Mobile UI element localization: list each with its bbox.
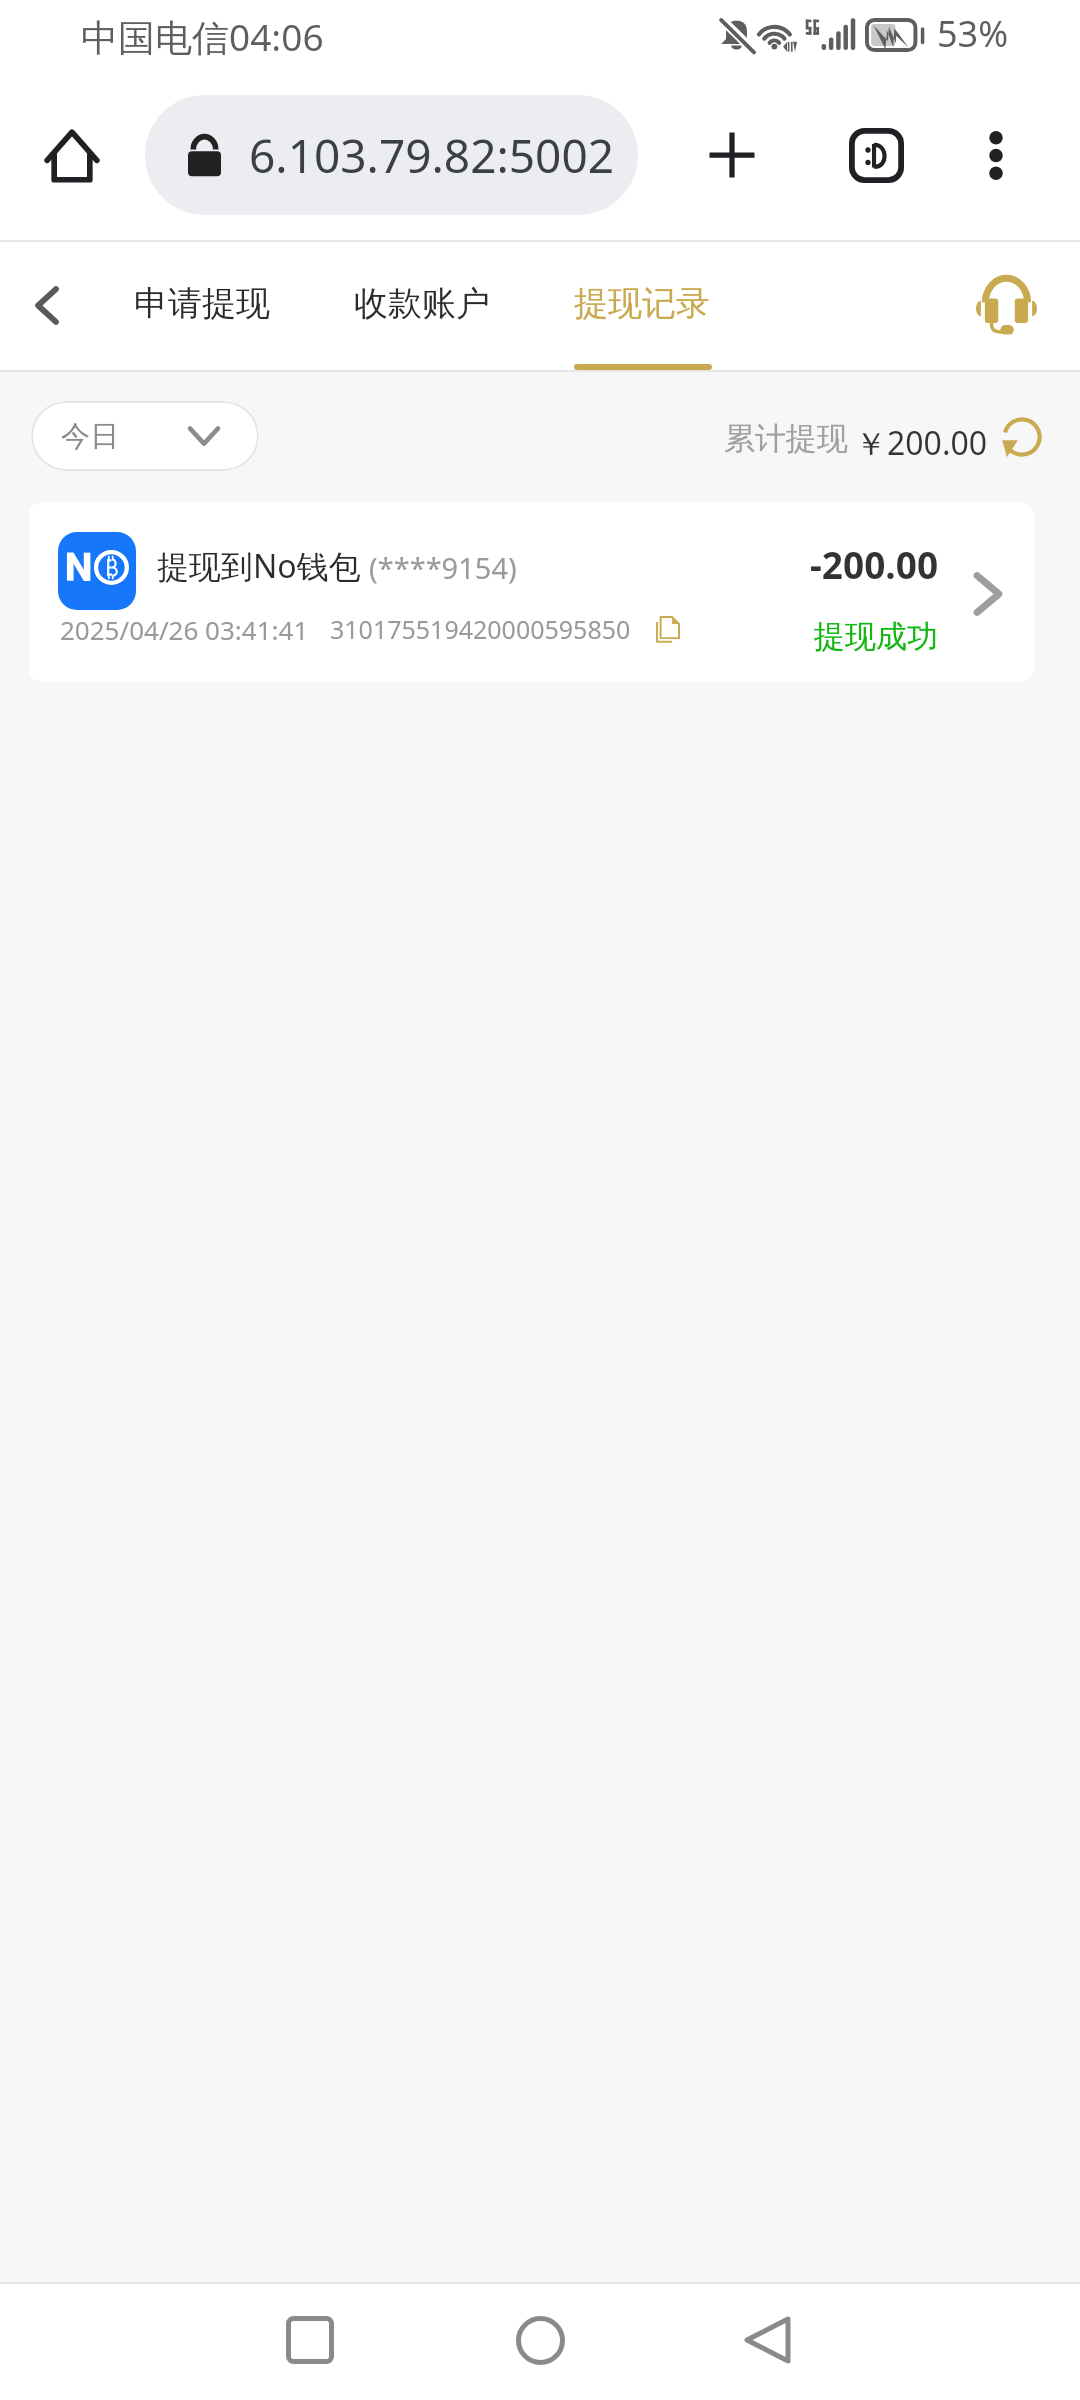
button[interactable]: Back xyxy=(713,2285,823,2395)
staticText: 6.103.79.82:5002 xyxy=(249,124,615,187)
staticText: 收款账户 xyxy=(354,282,490,325)
button[interactable]: 申请提现 xyxy=(134,242,272,370)
button[interactable]: Copy xyxy=(648,610,686,648)
button[interactable]: Tabs xyxy=(831,110,921,200)
button[interactable]: 提现记录 xyxy=(574,242,712,370)
button[interactable]: 今日 xyxy=(31,401,259,471)
staticText: 53% xyxy=(937,9,1009,58)
staticText: 申请提现 xyxy=(134,282,270,325)
button[interactable]: Back xyxy=(4,263,88,347)
staticText: 中国电信04:06 xyxy=(81,11,324,62)
staticText: ￥200.00 xyxy=(855,421,988,465)
staticText: 提现成功 xyxy=(814,617,938,656)
button[interactable]: 6.103.79.82:5002 xyxy=(145,95,638,215)
button[interactable]: Refresh xyxy=(1000,415,1044,459)
staticText: 累计提现 xyxy=(724,419,848,458)
staticText: -200.00 xyxy=(810,539,939,589)
button[interactable]: Home xyxy=(27,111,117,201)
button[interactable]: Recents xyxy=(255,2285,365,2395)
staticText: (****9154) xyxy=(369,548,517,587)
staticText: 今日 xyxy=(61,418,119,455)
button[interactable]: 收款账户 xyxy=(354,242,492,370)
button[interactable]: 提现到No钱包 xyxy=(29,502,1034,682)
staticText: 提现到No钱包 xyxy=(157,544,361,588)
staticText: 提现记录 xyxy=(574,282,710,325)
button[interactable]: Customer service xyxy=(976,276,1037,332)
button[interactable]: New tab xyxy=(687,110,777,200)
button[interactable]: More options xyxy=(951,110,1041,200)
button[interactable]: Home xyxy=(485,2285,595,2395)
staticText: 2025/04/26 03:41:41 xyxy=(60,612,309,647)
staticText: 310175519420000595850 xyxy=(330,612,631,646)
